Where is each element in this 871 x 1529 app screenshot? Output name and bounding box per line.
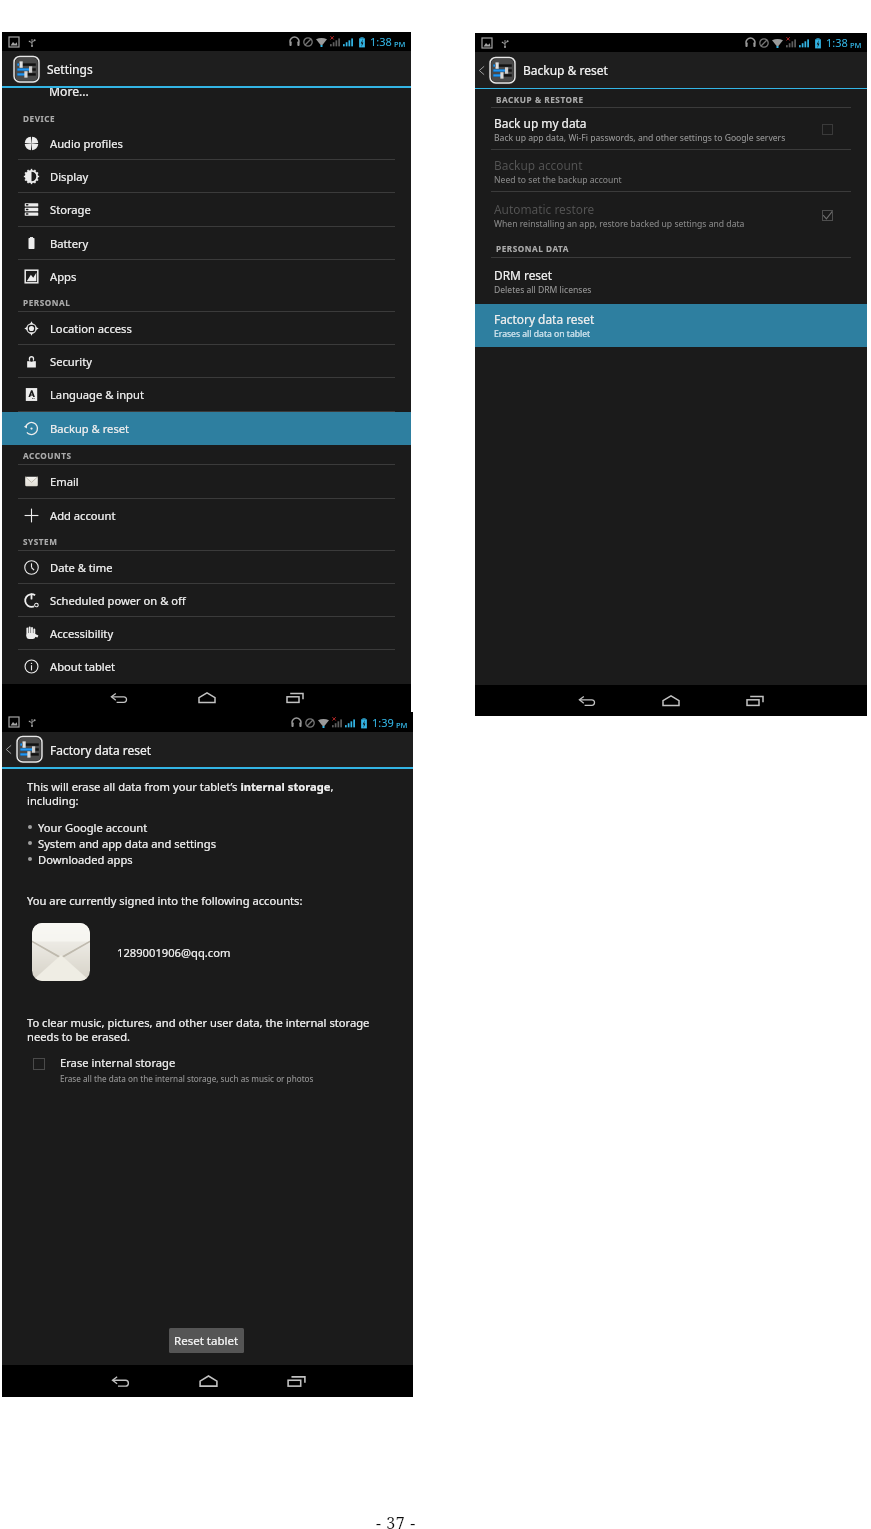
- staticText: BACKUP & RESTORE: [496, 94, 584, 105]
- button[interactable]: Factory data reset: [2, 732, 413, 767]
- staticText: Automatic restore: [494, 201, 595, 217]
- button[interactable]: Security: [2, 345, 411, 378]
- staticText: Erase internal storage: [60, 1055, 176, 1070]
- button[interactable]: Back up my data: [475, 108, 867, 150]
- button[interactable]: Email: [2, 465, 411, 498]
- staticText: Backup account: [494, 157, 583, 173]
- button[interactable]: Audio profiles: [2, 127, 411, 160]
- staticText: DEVICE: [23, 113, 56, 124]
- button[interactable]: Reset tablet: [169, 1328, 244, 1353]
- staticText: Deletes all DRM licenses: [494, 284, 592, 296]
- staticText: Scheduled power on & off: [50, 593, 186, 608]
- button[interactable]: About tablet: [2, 650, 411, 683]
- staticText: Back up app data, Wi-Fi passwords, and o…: [494, 132, 786, 144]
- staticText: PM: [394, 39, 406, 49]
- button[interactable]: Display: [2, 160, 411, 193]
- staticText: To clear music, pictures, and other user…: [27, 1015, 392, 1045]
- staticText: Factory data reset: [494, 311, 595, 327]
- staticText: 1289001906@qq.com: [117, 945, 231, 960]
- button[interactable]: Scheduled power on & off: [2, 584, 411, 617]
- button[interactable]: Settings: [2, 51, 411, 87]
- staticText: - 37 -: [376, 1512, 416, 1529]
- staticText: Reset tablet: [174, 1333, 239, 1349]
- button[interactable]: Home: [163, 684, 251, 712]
- staticText: DRM reset: [494, 267, 553, 283]
- button[interactable]: Back: [545, 685, 629, 716]
- staticText: 1:39: [372, 715, 394, 730]
- staticText: 1:38: [826, 35, 848, 50]
- button[interactable]: Add account: [2, 499, 411, 532]
- staticText: Back up my data: [494, 115, 587, 131]
- button[interactable]: Apps: [2, 260, 411, 293]
- button[interactable]: Date & time: [2, 551, 411, 584]
- staticText: Location access: [50, 321, 132, 336]
- button[interactable]: Battery: [2, 227, 411, 260]
- staticText: Backup & reset: [523, 62, 608, 78]
- staticText: Display: [50, 169, 89, 184]
- staticText: About tablet: [50, 659, 116, 674]
- staticText: Apps: [50, 269, 77, 284]
- button[interactable]: Backup account: [475, 150, 867, 192]
- button[interactable]: Back: [75, 684, 163, 712]
- staticText: Erases all data on tablet: [494, 328, 591, 340]
- button[interactable]: Home: [164, 1365, 252, 1397]
- button[interactable]: Recent apps: [713, 685, 797, 716]
- button[interactable]: Factory data reset: [475, 304, 867, 347]
- staticText: Settings: [47, 61, 93, 77]
- staticText: SYSTEM: [23, 536, 58, 547]
- button[interactable]: Backup & reset: [2, 412, 411, 445]
- staticText: Your Google account: [38, 820, 148, 835]
- staticText: Security: [50, 354, 92, 369]
- button[interactable]: Automatic restore: [475, 192, 867, 238]
- button[interactable]: Home: [629, 685, 713, 716]
- button[interactable]: Recent apps: [251, 684, 339, 712]
- staticText: Language & input: [50, 387, 144, 402]
- button[interactable]: Accessibility: [2, 617, 411, 650]
- staticText: PM: [396, 720, 408, 730]
- staticText: This will erase all data from your table…: [27, 779, 372, 809]
- staticText: Downloaded apps: [38, 852, 133, 867]
- button[interactable]: Storage: [2, 193, 411, 226]
- staticText: You are currently signed into the follow…: [27, 893, 303, 908]
- staticText: Storage: [50, 202, 91, 217]
- button[interactable]: Back: [76, 1365, 164, 1397]
- staticText: 1:38: [370, 34, 392, 49]
- button[interactable]: Language & input: [2, 378, 411, 411]
- button[interactable]: Location access: [2, 312, 411, 345]
- staticText: System and app data and settings: [38, 836, 216, 851]
- button[interactable]: Backup & reset: [475, 52, 867, 88]
- staticText: Factory data reset: [50, 742, 152, 758]
- button[interactable]: Erase internal storage: [33, 1055, 314, 1084]
- staticText: More...: [49, 87, 89, 100]
- staticText: ACCOUNTS: [23, 450, 72, 461]
- staticText: Accessibility: [50, 626, 114, 641]
- button[interactable]: DRM reset: [475, 258, 867, 304]
- staticText: PM: [850, 40, 862, 50]
- staticText: When reinstalling an app, restore backed…: [494, 218, 745, 230]
- staticText: PERSONAL DATA: [496, 243, 569, 254]
- staticText: Backup & reset: [50, 421, 130, 436]
- staticText: Date & time: [50, 560, 113, 575]
- button[interactable]: More...: [2, 87, 411, 127]
- staticText: Battery: [50, 236, 89, 251]
- button[interactable]: Recent apps: [252, 1365, 340, 1397]
- staticText: PERSONAL: [23, 297, 71, 308]
- staticText: Need to set the backup account: [494, 174, 622, 186]
- staticText: Email: [50, 474, 79, 489]
- staticText: Erase all the data on the internal stora…: [60, 1073, 314, 1084]
- staticText: Audio profiles: [50, 136, 123, 151]
- staticText: Add account: [50, 508, 116, 523]
